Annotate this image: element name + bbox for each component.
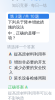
staticText: 提高原材料利用率可以在不影响质	[8, 91, 52, 100]
staticText: 请选择一个答案	[7, 44, 35, 49]
button[interactable]: B 增加非必要的开支	[7, 58, 48, 65]
button[interactable]: D 延长设备检修周期	[7, 74, 48, 81]
button[interactable]: C 减少必要的安全投入	[7, 66, 48, 73]
staticText: C 减少必要的安全投入	[9, 65, 46, 75]
staticText: 中，正确的是哪一项？	[8, 31, 40, 40]
button[interactable]: A 提高原材料利用率	[7, 50, 48, 57]
staticText: A 提高原材料利用率	[9, 51, 46, 56]
staticText: 降本	[12, 0, 28, 1]
staticText: 第 3 题 / 共 10 题	[10, 14, 39, 19]
staticText: 知识竞赛 · 每日一练	[12, 2, 47, 8]
staticText: B 增加非必要的开支	[9, 59, 46, 64]
staticText: 增效	[28, 0, 44, 1]
staticText: 下列关于降本增效措施的说法	[8, 20, 44, 30]
staticText: 正确答案 A	[8, 84, 28, 90]
staticText: D 延长设备检修周期	[9, 75, 46, 80]
